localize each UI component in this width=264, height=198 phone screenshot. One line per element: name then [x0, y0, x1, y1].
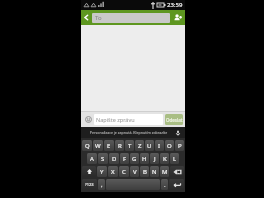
button[interactable]: To — [92, 13, 170, 23]
button[interactable]: H — [140, 153, 149, 164]
button[interactable]: J — [150, 153, 159, 164]
staticText: B — [143, 168, 147, 176]
button[interactable]: Personalizace je zapnutá. Klepnutím zobr… — [84, 130, 173, 135]
staticText: J — [154, 155, 156, 163]
staticText: 23:59 — [167, 1, 183, 9]
button[interactable]: Z — [135, 140, 144, 151]
button[interactable]: . — [161, 179, 168, 190]
staticText: R — [118, 142, 122, 150]
staticText: M — [162, 168, 168, 176]
button[interactable]: X — [108, 166, 118, 177]
staticText: , — [101, 181, 103, 189]
button[interactable]: E — [104, 140, 114, 151]
button[interactable]: L — [170, 153, 179, 164]
button[interactable]: Symbols — [82, 179, 97, 190]
staticText: A — [90, 155, 94, 163]
button[interactable]: Back — [81, 10, 92, 25]
staticText: G — [132, 155, 137, 163]
button[interactable]: Y — [97, 166, 107, 177]
staticText: X — [111, 168, 115, 176]
staticText: Q — [85, 142, 90, 150]
button[interactable]: , — [98, 179, 105, 190]
button[interactable]: N — [150, 166, 159, 177]
staticText: Odeslat — [166, 117, 183, 123]
button[interactable]: V — [130, 166, 139, 177]
button[interactable]: A — [87, 153, 97, 164]
staticText: O — [167, 142, 172, 150]
staticText: E — [107, 142, 111, 150]
staticText: C — [122, 168, 126, 176]
staticText: V — [133, 168, 137, 176]
button[interactable]: Napište zprávu — [94, 114, 163, 125]
staticText: Z — [138, 142, 142, 150]
button[interactable]: K — [160, 153, 169, 164]
button[interactable]: P — [175, 140, 184, 151]
button[interactable]: I — [155, 140, 164, 151]
button[interactable]: T — [125, 140, 134, 151]
staticText: H — [142, 155, 147, 163]
button[interactable]: Insert smiley — [83, 114, 94, 125]
staticText: D — [112, 155, 117, 163]
staticText: L — [173, 155, 177, 163]
staticText: N — [152, 168, 157, 176]
button[interactable]: Voice input — [173, 128, 182, 137]
staticText: I — [158, 142, 161, 150]
button[interactable]: Odeslat — [165, 114, 183, 125]
staticText: To — [95, 14, 102, 22]
staticText: ?123 — [85, 182, 94, 187]
button[interactable]: U — [145, 140, 154, 151]
button[interactable]: W — [93, 140, 103, 151]
staticText: F — [123, 155, 127, 163]
button[interactable]: D — [109, 153, 119, 164]
staticText: U — [147, 142, 152, 150]
staticText: P — [178, 142, 182, 150]
staticText: Personalizace je zapnutá. Klepnutím zobr… — [84, 130, 173, 135]
staticText: T — [128, 142, 132, 150]
button[interactable]: M — [160, 166, 169, 177]
staticText: W — [95, 142, 101, 150]
button[interactable]: Add contact — [170, 10, 185, 25]
button[interactable]: S — [98, 153, 108, 164]
staticText: . — [164, 181, 166, 189]
staticText: Napište zprávu — [96, 116, 135, 123]
button[interactable]: G — [130, 153, 139, 164]
button[interactable]: O — [165, 140, 174, 151]
button[interactable]: Delete — [170, 166, 184, 177]
staticText: S — [101, 155, 105, 163]
staticText: Y — [100, 168, 104, 176]
button[interactable]: R — [115, 140, 124, 151]
button[interactable]: Space — [106, 179, 160, 190]
button[interactable]: Enter — [169, 179, 184, 190]
button[interactable]: Q — [82, 140, 92, 151]
button[interactable]: C — [119, 166, 129, 177]
button[interactable]: B — [140, 166, 149, 177]
staticText: K — [163, 155, 167, 163]
button[interactable]: Shift — [82, 166, 96, 177]
button[interactable]: F — [120, 153, 129, 164]
